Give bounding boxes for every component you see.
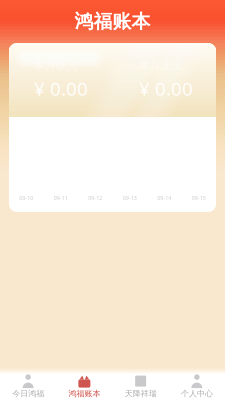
staticText: 09-12 [88,194,102,201]
button[interactable]: 鸿福账本 [56,374,112,400]
staticText: 今日鸿福 [12,389,44,398]
button[interactable]: 天降祥瑞 [112,374,169,400]
button[interactable]: 今日鸿福 [0,374,56,400]
staticText: 个人中心 [181,389,213,398]
staticText: 本月收入 [34,59,78,72]
staticText: 09-14 [157,194,171,201]
staticText: 09-11 [54,194,68,201]
staticText: 09-10 [19,194,33,201]
staticText: 本月支出 [139,59,183,72]
staticText: 天降祥瑞 [125,389,157,398]
staticText: ¥ 0.00 [34,76,88,101]
staticText: ¥ 0.00 [139,76,193,101]
staticText: 09-15 [192,194,206,201]
staticText: 鸿福账本 [68,389,100,398]
staticText: 09-13 [123,194,137,201]
staticText: 鸿福账本 [74,10,150,33]
button[interactable]: 个人中心 [169,374,225,400]
